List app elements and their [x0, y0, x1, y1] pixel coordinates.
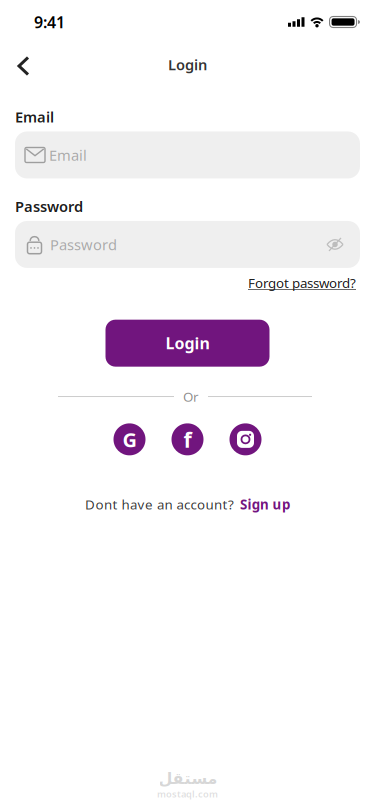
staticText: 9:41 — [34, 11, 65, 33]
staticText: مستقل — [158, 769, 217, 788]
button[interactable]: Sign in with Facebook — [171, 423, 203, 455]
staticText: Email — [15, 107, 54, 126]
staticText: G — [122, 426, 136, 453]
staticText: Email — [49, 145, 87, 165]
staticText: Password — [15, 196, 83, 216]
button[interactable]: Forgot password? — [248, 274, 356, 292]
button[interactable]: Show password — [320, 231, 350, 257]
button[interactable]: Sign in with Instagram — [229, 423, 261, 455]
staticText: Forgot password? — [248, 274, 356, 292]
staticText: Or — [183, 388, 199, 405]
button[interactable]: Back — [0, 46, 30, 86]
button[interactable]: Login — [105, 320, 269, 367]
staticText: Dont have an account? — [85, 495, 234, 513]
staticText: Sign up — [240, 495, 290, 513]
button[interactable]: Sign up — [240, 495, 290, 513]
staticText: Password — [50, 235, 117, 254]
staticText: Login — [165, 332, 209, 354]
staticText: f — [183, 425, 191, 453]
staticText: mostaql.com — [157, 788, 218, 800]
button[interactable]: Sign in with Google — [113, 423, 145, 455]
button[interactable]: Email — [15, 131, 360, 178]
staticText: Login — [168, 55, 207, 74]
button[interactable]: Password — [15, 221, 360, 268]
